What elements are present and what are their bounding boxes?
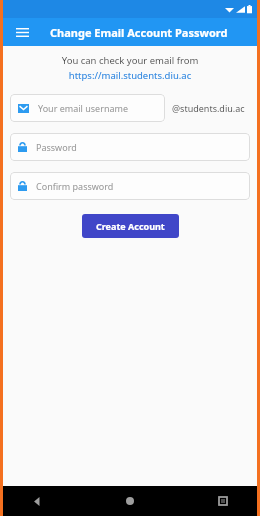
staticText: https://mail.students.diu.ac xyxy=(3,69,257,82)
button[interactable]: Open navigation menu xyxy=(11,21,33,43)
button[interactable]: Recent apps xyxy=(211,489,235,513)
staticText: Confirm password xyxy=(36,180,114,192)
button[interactable]: Home xyxy=(118,489,142,513)
button[interactable]: Your email username xyxy=(10,94,165,122)
button[interactable]: Create Account xyxy=(82,214,179,238)
button[interactable]: Confirm password xyxy=(10,172,250,200)
staticText: You can check your email from xyxy=(3,54,257,67)
staticText: Your email username xyxy=(38,102,129,114)
staticText: @students.diu.ac xyxy=(172,102,245,114)
staticText: Password xyxy=(36,141,77,153)
button[interactable]: Back xyxy=(25,489,49,513)
button[interactable]: https://mail.students.diu.ac xyxy=(3,69,257,82)
staticText: Change Email Account Password xyxy=(50,25,228,40)
staticText: Create Account xyxy=(96,220,165,232)
button[interactable]: Password xyxy=(10,133,250,161)
